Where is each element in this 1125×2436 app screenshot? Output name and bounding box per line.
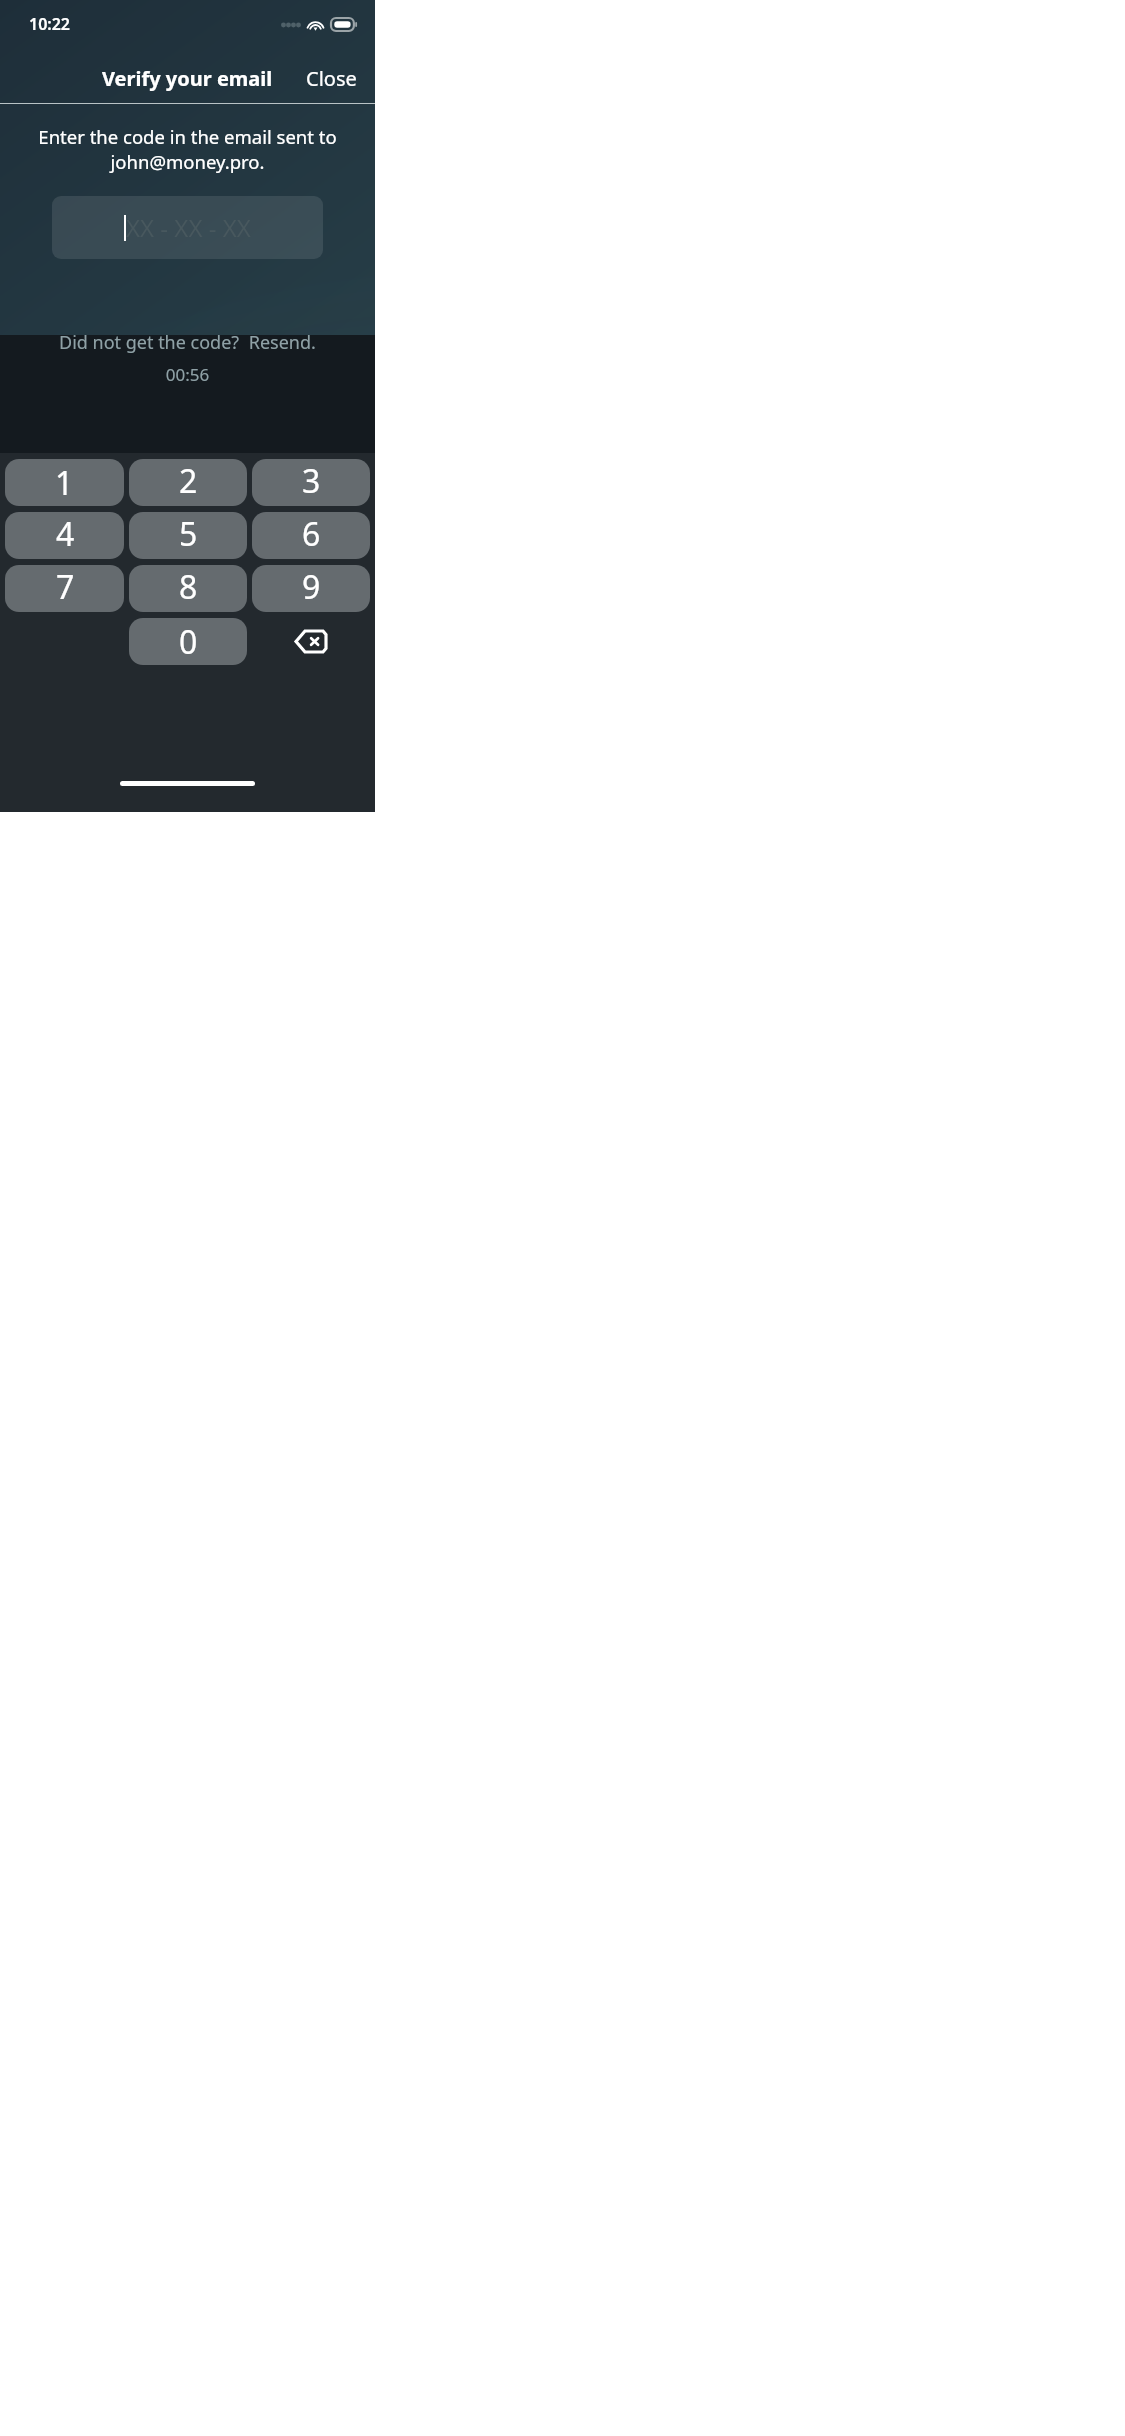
staticText: 7 (56, 565, 75, 609)
button[interactable]: 3 (252, 459, 370, 506)
staticText: 5 (179, 512, 198, 556)
staticText: 8 (179, 565, 198, 609)
staticText: 2 (179, 459, 198, 503)
button[interactable]: 1 (5, 459, 124, 506)
button[interactable]: 4 (5, 512, 124, 559)
button[interactable]: 7 (5, 565, 124, 612)
button[interactable]: 2 (129, 459, 247, 506)
staticText: 9 (302, 565, 321, 609)
button[interactable]: Close (288, 59, 375, 98)
button[interactable]: Resend. (244, 330, 316, 355)
staticText: Enter the code in the email sent to john… (6, 124, 369, 174)
button[interactable]: 8 (129, 565, 247, 612)
staticText: Verify your email (102, 65, 273, 92)
button[interactable]: Backspace (252, 618, 370, 665)
staticText: 1 (55, 461, 74, 505)
staticText: 3 (302, 459, 321, 503)
staticText: Did not get the code? (59, 330, 244, 355)
staticText: Close (306, 65, 357, 92)
staticText: 00:56 (0, 363, 375, 386)
staticText: 4 (56, 512, 75, 556)
button[interactable]: 9 (252, 565, 370, 612)
button[interactable]: 6 (252, 512, 370, 559)
button[interactable]: XX - XX - XX (52, 196, 323, 259)
staticText: XX - XX - XX (126, 211, 251, 244)
button[interactable]: 5 (129, 512, 247, 559)
staticText: 10:22 (29, 13, 71, 35)
staticText: Resend. (244, 330, 316, 355)
staticText: 0 (179, 620, 198, 664)
button[interactable]: 0 (129, 618, 247, 665)
staticText: 6 (302, 512, 321, 556)
